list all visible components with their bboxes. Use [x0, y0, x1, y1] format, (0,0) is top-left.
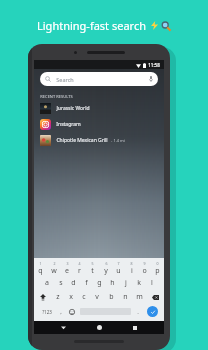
button[interactable]: b: [104, 290, 118, 304]
button[interactable]: Chipotle Mexican Grill: [40, 135, 158, 146]
staticText: 4: [78, 261, 81, 266]
button[interactable]: 7: [112, 260, 125, 276]
staticText: 0: [156, 261, 159, 266]
staticText: ,: [60, 308, 62, 316]
button[interactable]: Emoji: [66, 304, 78, 319]
staticText: e: [65, 266, 69, 276]
staticText: z: [56, 292, 60, 302]
button[interactable]: n: [118, 290, 132, 304]
button[interactable]: h: [106, 276, 119, 290]
staticText: l: [151, 278, 153, 288]
staticText: Lightning-fast search: [37, 18, 146, 33]
button[interactable]: z: [51, 290, 64, 304]
staticText: .: [137, 308, 139, 316]
staticText: Instagram: [56, 121, 81, 128]
staticText: 5: [91, 261, 94, 266]
button[interactable]: 5: [86, 260, 99, 276]
button[interactable]: 8: [125, 260, 138, 276]
button[interactable]: Jurassic World: [40, 103, 158, 114]
button[interactable]: d: [67, 276, 80, 290]
button[interactable]: Home: [93, 321, 106, 334]
staticText: Jurassic World: [56, 105, 90, 112]
staticText: d: [71, 278, 76, 288]
staticText: m: [136, 292, 143, 302]
button[interactable]: j: [119, 276, 132, 290]
staticText: 3: [66, 261, 69, 266]
button[interactable]: .: [133, 304, 143, 319]
staticText: o: [142, 266, 147, 276]
staticText: 8: [130, 261, 133, 266]
staticText: 2: [53, 261, 56, 266]
staticText: s: [59, 278, 63, 288]
staticText: x: [69, 292, 73, 302]
staticText: y: [104, 266, 108, 276]
button[interactable]: m: [132, 290, 146, 304]
button[interactable]: 0: [151, 260, 164, 276]
button[interactable]: 9: [138, 260, 151, 276]
staticText: j: [125, 278, 127, 288]
staticText: 6: [105, 261, 108, 266]
staticText: Search: [56, 76, 74, 83]
button[interactable]: v: [90, 290, 104, 304]
staticText: Chipotle Mexican Grill: [56, 137, 108, 144]
button[interactable]: c: [77, 290, 90, 304]
button[interactable]: 6: [99, 260, 112, 276]
button[interactable]: f: [80, 276, 93, 290]
staticText: RECENT RESULTS: [40, 94, 73, 99]
staticText: q: [38, 266, 43, 276]
staticText: f: [85, 278, 88, 288]
button[interactable]: ,: [56, 304, 66, 319]
button[interactable]: 1: [34, 260, 47, 276]
button[interactable]: Back: [57, 321, 70, 334]
button[interactable]: Recents: [128, 321, 141, 334]
staticText: v: [95, 292, 99, 302]
button[interactable]: ?123: [37, 304, 56, 319]
staticText: c: [82, 292, 86, 302]
staticText: 7: [117, 261, 120, 266]
staticText: a: [45, 278, 49, 288]
staticText: 11:58: [148, 62, 160, 68]
button[interactable]: Instagram: [40, 119, 158, 130]
staticText: ?123: [42, 309, 52, 315]
button[interactable]: g: [93, 276, 106, 290]
button[interactable]: Search: [40, 72, 158, 86]
button[interactable]: 2: [47, 260, 60, 276]
button[interactable]: a: [40, 276, 54, 290]
staticText: r: [78, 266, 81, 276]
button[interactable]: l: [145, 276, 158, 290]
staticText: h: [110, 278, 115, 288]
button[interactable]: 4: [73, 260, 86, 276]
button[interactable]: Enter: [143, 304, 161, 319]
staticText: t: [91, 266, 94, 276]
staticText: - 1.4 mi: [111, 138, 125, 143]
staticText: 1: [39, 261, 42, 266]
staticText: n: [123, 292, 128, 302]
staticText: b: [109, 292, 114, 302]
staticText: p: [155, 266, 160, 276]
staticText: g: [97, 278, 102, 288]
staticText: k: [137, 278, 141, 288]
staticText: 9: [143, 261, 146, 266]
button[interactable]: Backspace: [146, 290, 164, 304]
button[interactable]: x: [64, 290, 77, 304]
staticText: i: [131, 266, 133, 276]
button[interactable]: 3: [60, 260, 73, 276]
button[interactable]: Shift: [34, 290, 51, 304]
button[interactable]: s: [54, 276, 67, 290]
staticText: u: [116, 266, 121, 276]
staticText: w: [51, 266, 57, 276]
button[interactable]: k: [132, 276, 145, 290]
